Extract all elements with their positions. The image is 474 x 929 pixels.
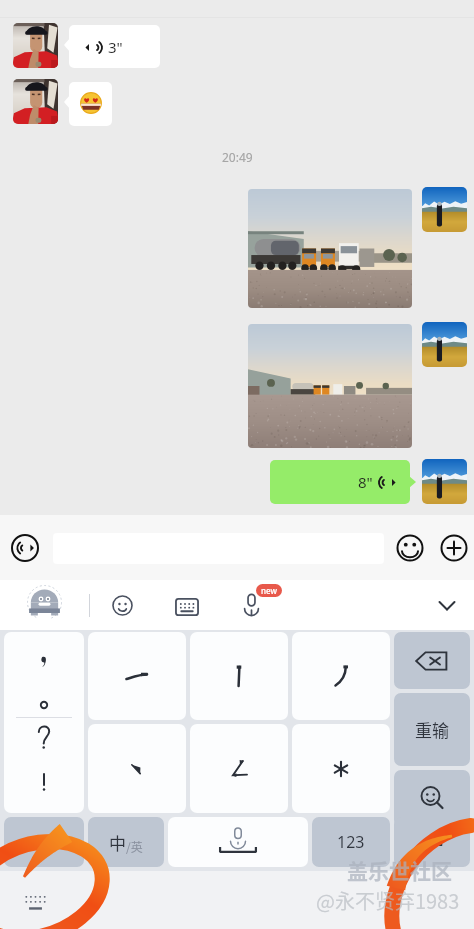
button[interactable] [190, 724, 288, 813]
button[interactable]: More options [440, 534, 468, 562]
button[interactable]: 3" [64, 25, 160, 68]
button[interactable]: Voice input [11, 534, 39, 562]
button[interactable] [422, 322, 467, 367]
staticText: 盖乐世社区 [347, 855, 452, 885]
staticText: 3" [108, 37, 123, 57]
button[interactable] [88, 724, 186, 813]
button[interactable] [422, 187, 467, 232]
staticText: /英 [126, 838, 143, 855]
button[interactable]: Backspace [394, 632, 470, 689]
button[interactable]: Emoji [396, 534, 424, 562]
button[interactable] [422, 459, 467, 504]
button[interactable] [64, 82, 112, 126]
button[interactable]: Stickers [112, 595, 133, 616]
staticText: 重输 [415, 717, 449, 742]
button[interactable]: Emoji search [394, 770, 470, 827]
button[interactable] [13, 79, 58, 124]
button[interactable] [292, 632, 390, 720]
button[interactable]: Keyboard [175, 595, 199, 619]
button[interactable] [190, 632, 288, 720]
button[interactable]: 符 [4, 817, 84, 867]
staticText: 中 [109, 830, 126, 855]
staticText: 20:49 [222, 149, 253, 165]
button[interactable] [4, 632, 84, 813]
staticText: new [261, 585, 277, 596]
button[interactable]: Collapse keyboard [435, 594, 459, 618]
button[interactable] [88, 632, 186, 720]
button[interactable]: Switch input method [24, 891, 47, 914]
button[interactable]: 重输 [394, 693, 470, 766]
staticText: @永不贤弃1983 [316, 886, 460, 915]
button[interactable]: 中 [88, 817, 164, 867]
button[interactable]: Voice [240, 593, 263, 616]
button[interactable]: Enter [394, 817, 470, 867]
button[interactable] [292, 724, 390, 813]
staticText: 8" [358, 472, 373, 492]
button[interactable]: Assistant [27, 585, 62, 620]
button[interactable]: Space [168, 817, 308, 867]
button[interactable]: Photo [248, 189, 412, 308]
button[interactable]: Photo [248, 324, 412, 448]
button[interactable]: 8" [270, 460, 417, 504]
button[interactable]: 123 [312, 817, 390, 867]
staticText: 符 [36, 831, 53, 854]
staticText: 123 [337, 831, 365, 853]
button[interactable] [13, 23, 58, 68]
